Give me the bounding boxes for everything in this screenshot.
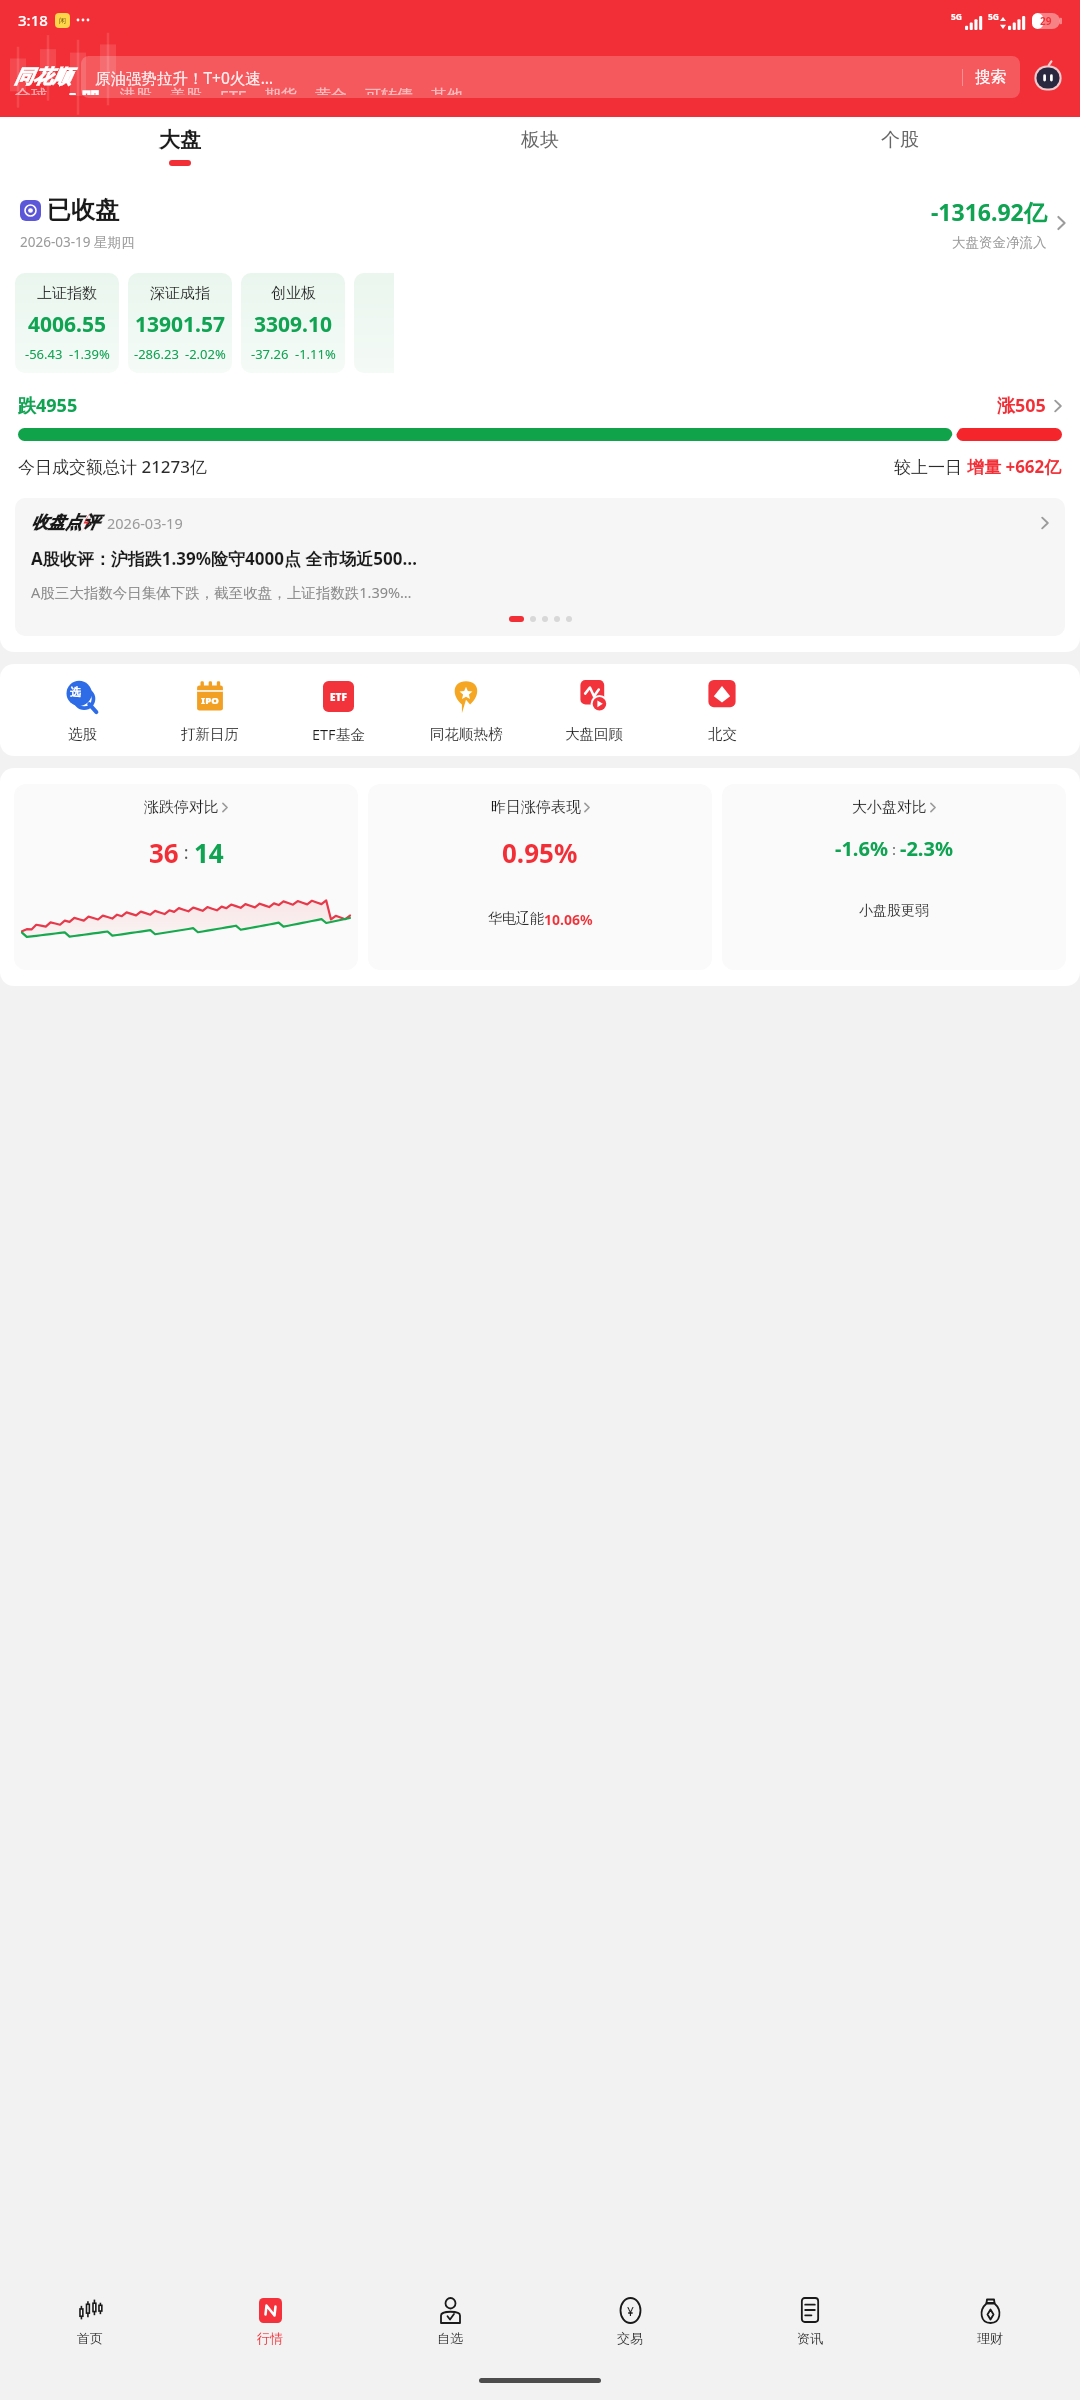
staticText: 昨日涨停表现 bbox=[491, 798, 581, 817]
staticText: 行情 bbox=[257, 2330, 283, 2346]
staticText: 同花顺 bbox=[14, 65, 71, 89]
button[interactable]: 选 bbox=[18, 678, 146, 743]
staticText: A股三大指数今日集体下跌，截至收盘，上证指数跌1.39%… bbox=[31, 582, 412, 602]
staticText: 10.06% bbox=[544, 910, 593, 929]
button[interactable]: 创业板 bbox=[241, 273, 345, 373]
staticText: 29 bbox=[1040, 14, 1052, 28]
staticText: 选 bbox=[70, 685, 81, 699]
staticText: ETF bbox=[330, 690, 347, 704]
staticText: -37.26 bbox=[251, 345, 289, 363]
staticText: -1.6% bbox=[835, 835, 888, 862]
button[interactable]: 已收盘 bbox=[0, 195, 1080, 251]
staticText: 原油强势拉升！T+0火速… bbox=[95, 67, 962, 88]
staticText: 大盘资金净流入 bbox=[952, 234, 1047, 251]
staticText: 2026-03-19 bbox=[107, 513, 183, 533]
staticText: 交易 bbox=[617, 2330, 643, 2346]
staticText: 自选 bbox=[437, 2330, 463, 2346]
staticText: 港股 bbox=[120, 86, 152, 95]
staticText: 增量 +662亿 bbox=[967, 455, 1062, 478]
staticText: 北交 bbox=[708, 725, 737, 743]
button[interactable]: 大盘 bbox=[0, 117, 360, 175]
button[interactable]: ¥ bbox=[540, 2282, 720, 2360]
button[interactable]: 个股 bbox=[720, 117, 1080, 175]
button[interactable]: 理财 bbox=[900, 2282, 1080, 2360]
staticText: 黄金 bbox=[315, 86, 347, 95]
button[interactable]: ETF bbox=[220, 86, 247, 95]
staticText: 全球 bbox=[15, 86, 47, 95]
staticText: 14 bbox=[194, 835, 224, 870]
staticText: 2026-03-19 星期四 bbox=[20, 233, 135, 251]
staticText: 深证成指 bbox=[150, 284, 210, 303]
staticText: 大小盘对比 bbox=[852, 798, 927, 817]
staticText: 5G bbox=[988, 11, 1000, 23]
button[interactable]: A股 bbox=[65, 86, 102, 95]
button[interactable]: 首页 bbox=[0, 2282, 180, 2360]
staticText: -1.11% bbox=[295, 345, 336, 363]
button[interactable]: 期货 bbox=[265, 86, 297, 95]
staticText: 36 bbox=[149, 835, 179, 870]
staticText: -2.3% bbox=[900, 835, 953, 862]
button[interactable]: 涨跌停对比 bbox=[14, 784, 358, 970]
staticText: 今日成交额总计 21273亿 bbox=[18, 455, 208, 478]
staticText: 3:18 bbox=[18, 10, 48, 30]
button[interactable]: 全球 bbox=[15, 86, 47, 95]
button[interactable]: 大小盘对比 bbox=[722, 784, 1066, 970]
button[interactable]: AI 助手 bbox=[1030, 59, 1066, 95]
button[interactable]: 收盘点评 bbox=[15, 498, 1065, 636]
staticText: 搜索 bbox=[975, 67, 1006, 87]
button[interactable]: 大盘回顾 bbox=[530, 678, 658, 743]
staticText: 板块 bbox=[521, 128, 559, 152]
staticText: 闲 bbox=[59, 16, 66, 25]
staticText: 涨505 bbox=[997, 393, 1046, 418]
staticText: 收盘点评 bbox=[31, 512, 99, 533]
staticText: A股 bbox=[65, 86, 102, 95]
staticText: 首页 bbox=[77, 2330, 103, 2346]
button[interactable]: 北交 bbox=[658, 678, 786, 743]
staticText: 13901.57 bbox=[135, 310, 225, 339]
staticText: 涨跌停对比 bbox=[144, 798, 219, 817]
button[interactable]: IPO bbox=[146, 678, 274, 743]
staticText: 上证指数 bbox=[37, 284, 97, 303]
staticText: 打新日历 bbox=[181, 725, 239, 743]
button[interactable]: 上证指数 bbox=[15, 273, 119, 373]
button[interactable]: 其他 bbox=[431, 86, 463, 95]
staticText: -286.23 bbox=[134, 345, 179, 363]
button[interactable]: 自选 bbox=[360, 2282, 540, 2360]
staticText: : bbox=[888, 839, 900, 859]
staticText: A股收评：沪指跌1.39%险守4000点 全市场近500… bbox=[31, 547, 418, 570]
staticText: 跌4955 bbox=[18, 393, 78, 418]
staticText: ETF基金 bbox=[312, 724, 365, 744]
staticText: 大盘 bbox=[159, 127, 201, 153]
button[interactable]: 板块 bbox=[360, 117, 720, 175]
staticText: -1.39% bbox=[69, 345, 110, 363]
button[interactable]: 原油强势拉升！T+0火速… bbox=[81, 56, 1020, 98]
staticText: 其他 bbox=[431, 86, 463, 95]
staticText: -1316.92亿 bbox=[931, 196, 1047, 227]
button[interactable]: 同花顺热榜 bbox=[402, 678, 530, 743]
staticText: 资讯 bbox=[797, 2330, 823, 2346]
button[interactable]: 行情 bbox=[180, 2282, 360, 2360]
button[interactable]: 黄金 bbox=[315, 86, 347, 95]
button[interactable]: 可转债 bbox=[365, 86, 413, 95]
staticText: 理财 bbox=[977, 2330, 1003, 2346]
staticText: 华电辽能 bbox=[488, 910, 544, 928]
staticText: 可转债 bbox=[365, 86, 413, 95]
button[interactable]: 昨日涨停表现 bbox=[368, 784, 712, 970]
button[interactable]: ETF bbox=[274, 677, 402, 744]
staticText: 较上一日 bbox=[894, 455, 967, 478]
staticText: 4006.55 bbox=[28, 310, 106, 339]
staticText: 0.95% bbox=[502, 835, 578, 870]
staticText: 5G bbox=[951, 11, 963, 23]
button[interactable]: 美股 bbox=[170, 86, 202, 95]
staticText: 期货 bbox=[265, 86, 297, 95]
button[interactable]: 深证成指 bbox=[128, 273, 232, 373]
button[interactable]: 港股 bbox=[120, 86, 152, 95]
staticText: IPO bbox=[201, 694, 219, 707]
button[interactable]: 资讯 bbox=[720, 2282, 900, 2360]
staticText: 美股 bbox=[170, 86, 202, 95]
button[interactable]: 跌4955 bbox=[18, 393, 1062, 418]
button[interactable] bbox=[354, 273, 394, 373]
staticText: -56.43 bbox=[25, 345, 63, 363]
staticText: 小盘股更弱 bbox=[859, 902, 929, 920]
staticText: 同花顺热榜 bbox=[430, 725, 503, 743]
